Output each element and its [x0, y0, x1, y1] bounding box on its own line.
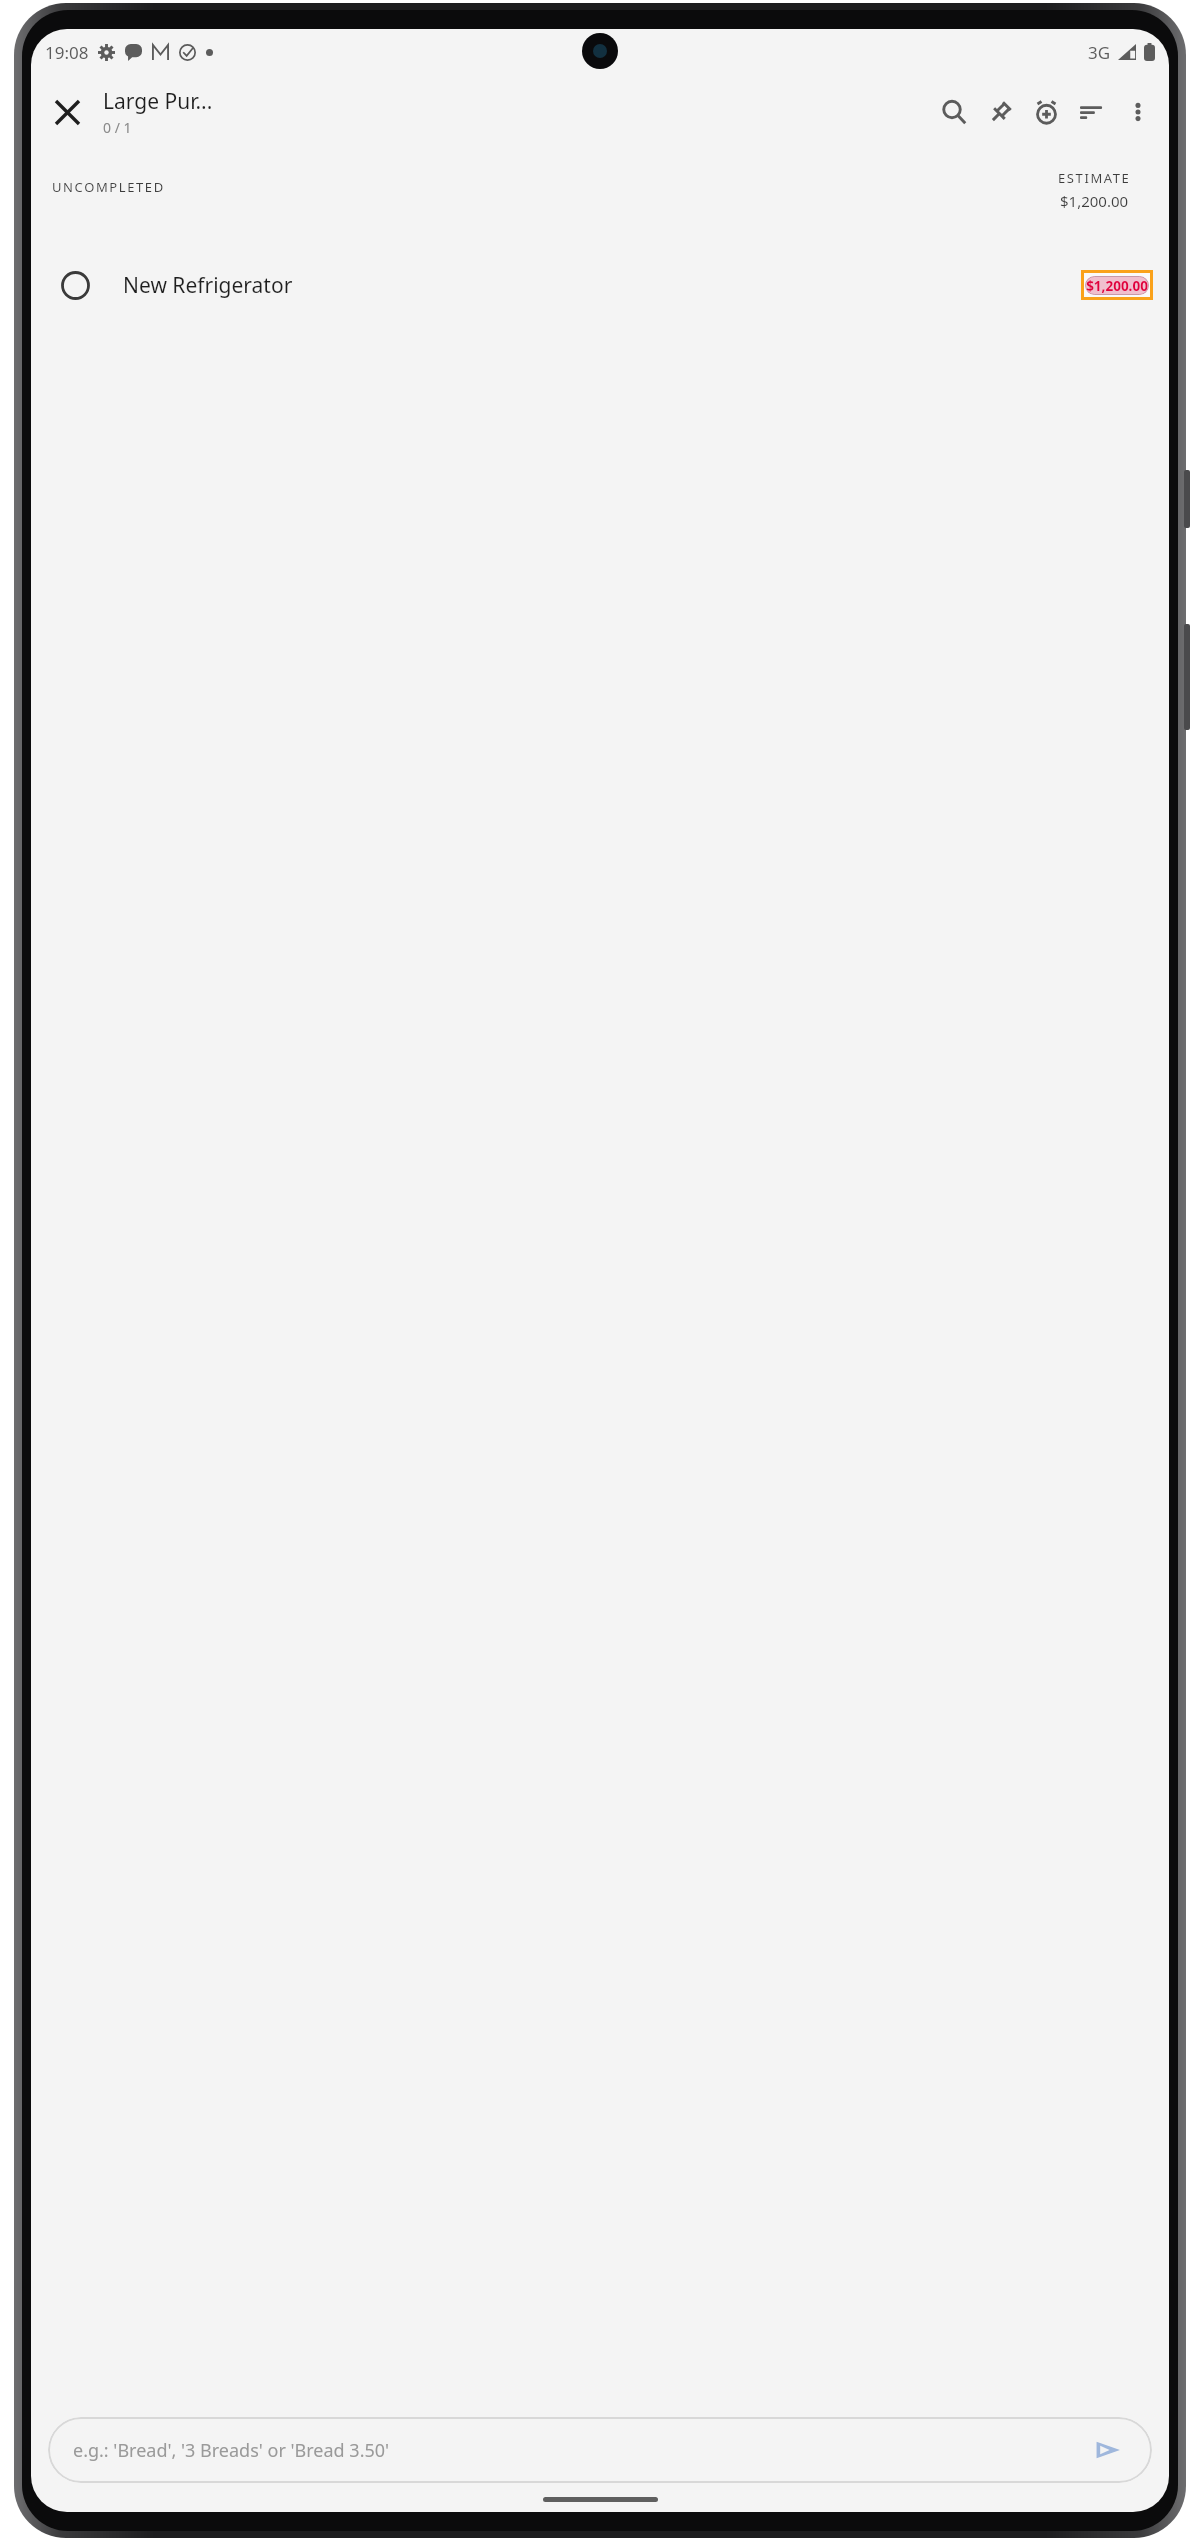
- button[interactable]: Search: [931, 89, 977, 135]
- staticText: ESTIMATE: [1058, 169, 1131, 187]
- staticText: $1,200.00: [1086, 277, 1148, 295]
- staticText: $1,200.00: [1060, 191, 1129, 211]
- button[interactable]: Close: [43, 88, 91, 136]
- button[interactable]: e.g.: 'Bread', '3 Breads' or 'Bread 3.50…: [48, 2417, 1152, 2483]
- staticText: UNCOMPLETED: [52, 178, 165, 196]
- button[interactable]: Mark complete: [31, 237, 1169, 333]
- staticText: New Refrigerator: [123, 271, 293, 300]
- button[interactable]: Pin: [977, 89, 1023, 135]
- staticText: 19:08: [45, 41, 89, 64]
- staticText: Large Pur...: [103, 87, 213, 116]
- staticText: 3G: [1088, 41, 1111, 64]
- staticText: 0 / 1: [103, 118, 132, 137]
- button[interactable]: Send: [1088, 2430, 1128, 2470]
- button[interactable]: Mark complete: [53, 263, 97, 307]
- button[interactable]: More options: [1115, 89, 1161, 135]
- button[interactable]: Add reminder: [1023, 89, 1069, 135]
- staticText: e.g.: 'Bread', '3 Breads' or 'Bread 3.50…: [73, 2438, 390, 2463]
- button[interactable]: Sort: [1069, 89, 1115, 135]
- button[interactable]: $1,200.00: [1085, 276, 1149, 295]
